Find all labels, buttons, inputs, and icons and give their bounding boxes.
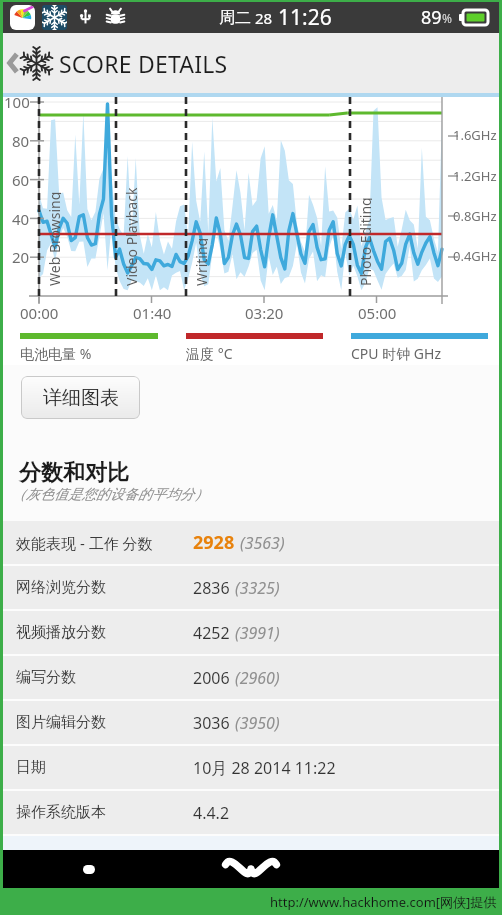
staticText: 网络浏览分数: [16, 578, 106, 597]
button[interactable]: Back: [83, 865, 95, 874]
staticText: http://www.hackhome.com[网侠]提供: [270, 893, 497, 911]
button[interactable]: 网络浏览分数: [3, 566, 499, 609]
staticText: 日期: [16, 758, 46, 777]
button[interactable]: 日期: [3, 746, 499, 789]
staticText: 视频播放分数: [16, 623, 106, 642]
staticText: 详细图表: [43, 386, 119, 410]
staticText: (3991): [235, 622, 280, 644]
staticText: 0.8GHz: [453, 207, 497, 225]
staticText: 1.2GHz: [453, 167, 497, 185]
staticText: 10月 28 2014 11:22: [193, 757, 336, 779]
staticText: 40: [12, 209, 30, 229]
staticText: (3950): [235, 712, 280, 734]
button[interactable]: 操作系统版本: [3, 791, 499, 834]
staticText: (3563): [240, 532, 285, 554]
staticText: 编写分数: [16, 668, 76, 687]
staticText: 60: [12, 170, 30, 190]
staticText: 00:00: [20, 303, 59, 323]
staticText: 4252: [193, 622, 230, 644]
staticText: 温度 °C: [186, 344, 233, 363]
staticText: Writing: [192, 237, 208, 286]
button[interactable]: 详细图表: [21, 376, 140, 419]
staticText: 图片编辑分数: [16, 713, 106, 732]
staticText: 2928: [193, 530, 235, 555]
staticText: 03:20: [245, 303, 284, 323]
button[interactable]: Home: [224, 858, 278, 880]
staticText: 1.6GHz: [453, 126, 497, 144]
staticText: 28: [255, 8, 273, 28]
button[interactable]: 图片编辑分数: [3, 701, 499, 744]
staticText: 分数和对比: [19, 459, 129, 487]
staticText: 3036: [193, 712, 230, 734]
other: Back: [7, 52, 19, 74]
staticText: (2960): [235, 667, 280, 689]
staticText: CPU 时钟 GHz: [351, 344, 441, 363]
staticText: %: [442, 10, 452, 26]
staticText: (3325): [235, 577, 280, 599]
staticText: Web Browsing: [45, 191, 61, 286]
button[interactable]: 效能表现 - 工作 分数: [3, 521, 499, 564]
button[interactable]: 编写分数: [3, 656, 499, 699]
staticText: （灰色值是您的设备的平均分）: [12, 486, 208, 504]
staticText: 89: [421, 5, 442, 30]
staticText: 效能表现 - 工作 分数: [16, 533, 153, 553]
staticText: 100: [4, 92, 30, 112]
staticText: 电池电量 %: [20, 344, 92, 363]
staticText: 周二: [219, 8, 251, 28]
staticText: 01:40: [133, 303, 172, 323]
staticText: 2006: [193, 667, 230, 689]
staticText: 80: [12, 131, 30, 151]
staticText: 4.4.2: [193, 802, 230, 824]
button[interactable]: 视频播放分数: [3, 611, 499, 654]
staticText: Photo Editing: [356, 197, 372, 286]
staticText: 操作系统版本: [16, 803, 106, 822]
staticText: 2836: [193, 577, 230, 599]
staticText: 20: [12, 247, 30, 267]
staticText: 0.4GHz: [453, 247, 497, 265]
staticText: 11:26: [278, 3, 332, 32]
staticText: Video Playback: [122, 187, 138, 286]
button[interactable]: Back: [3, 33, 499, 93]
staticText: 05:00: [358, 303, 397, 323]
staticText: SCORE DETAILS: [59, 48, 228, 79]
